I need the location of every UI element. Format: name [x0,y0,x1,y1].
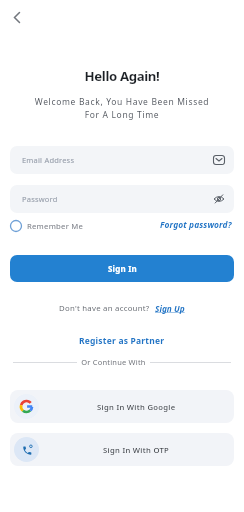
staticText: Sign In [108,263,137,274]
staticText: Register as Partner [79,335,165,347]
staticText: Don't have an account? [59,303,155,314]
staticText: Forgot password? [160,219,232,230]
staticText: Hello Again! [0,67,244,85]
staticText: Sign In With OTP [103,445,170,455]
button[interactable]: Sign In With OTP [10,433,234,466]
button[interactable]: Forgot password? [138,217,232,232]
staticText: Or Continue With [77,357,150,367]
button[interactable]: Don't have an account? [0,303,244,314]
staticText: Welcome Back, You Have Been Missed For A… [0,96,244,120]
button[interactable] [8,8,26,26]
staticText: Sign In With Google [97,402,176,412]
button[interactable]: Register as Partner [62,333,182,349]
button[interactable]: Sign In [10,255,234,282]
staticText: Sign Up [155,303,185,314]
button[interactable]: Sign In With Google [10,390,234,423]
button[interactable]: Remember Me [10,219,84,233]
staticText: Email Address [22,155,75,165]
button[interactable]: Password [10,185,234,213]
staticText: Remember Me [27,221,84,231]
button[interactable]: Email Address [10,146,234,174]
staticText: Password [22,194,58,204]
